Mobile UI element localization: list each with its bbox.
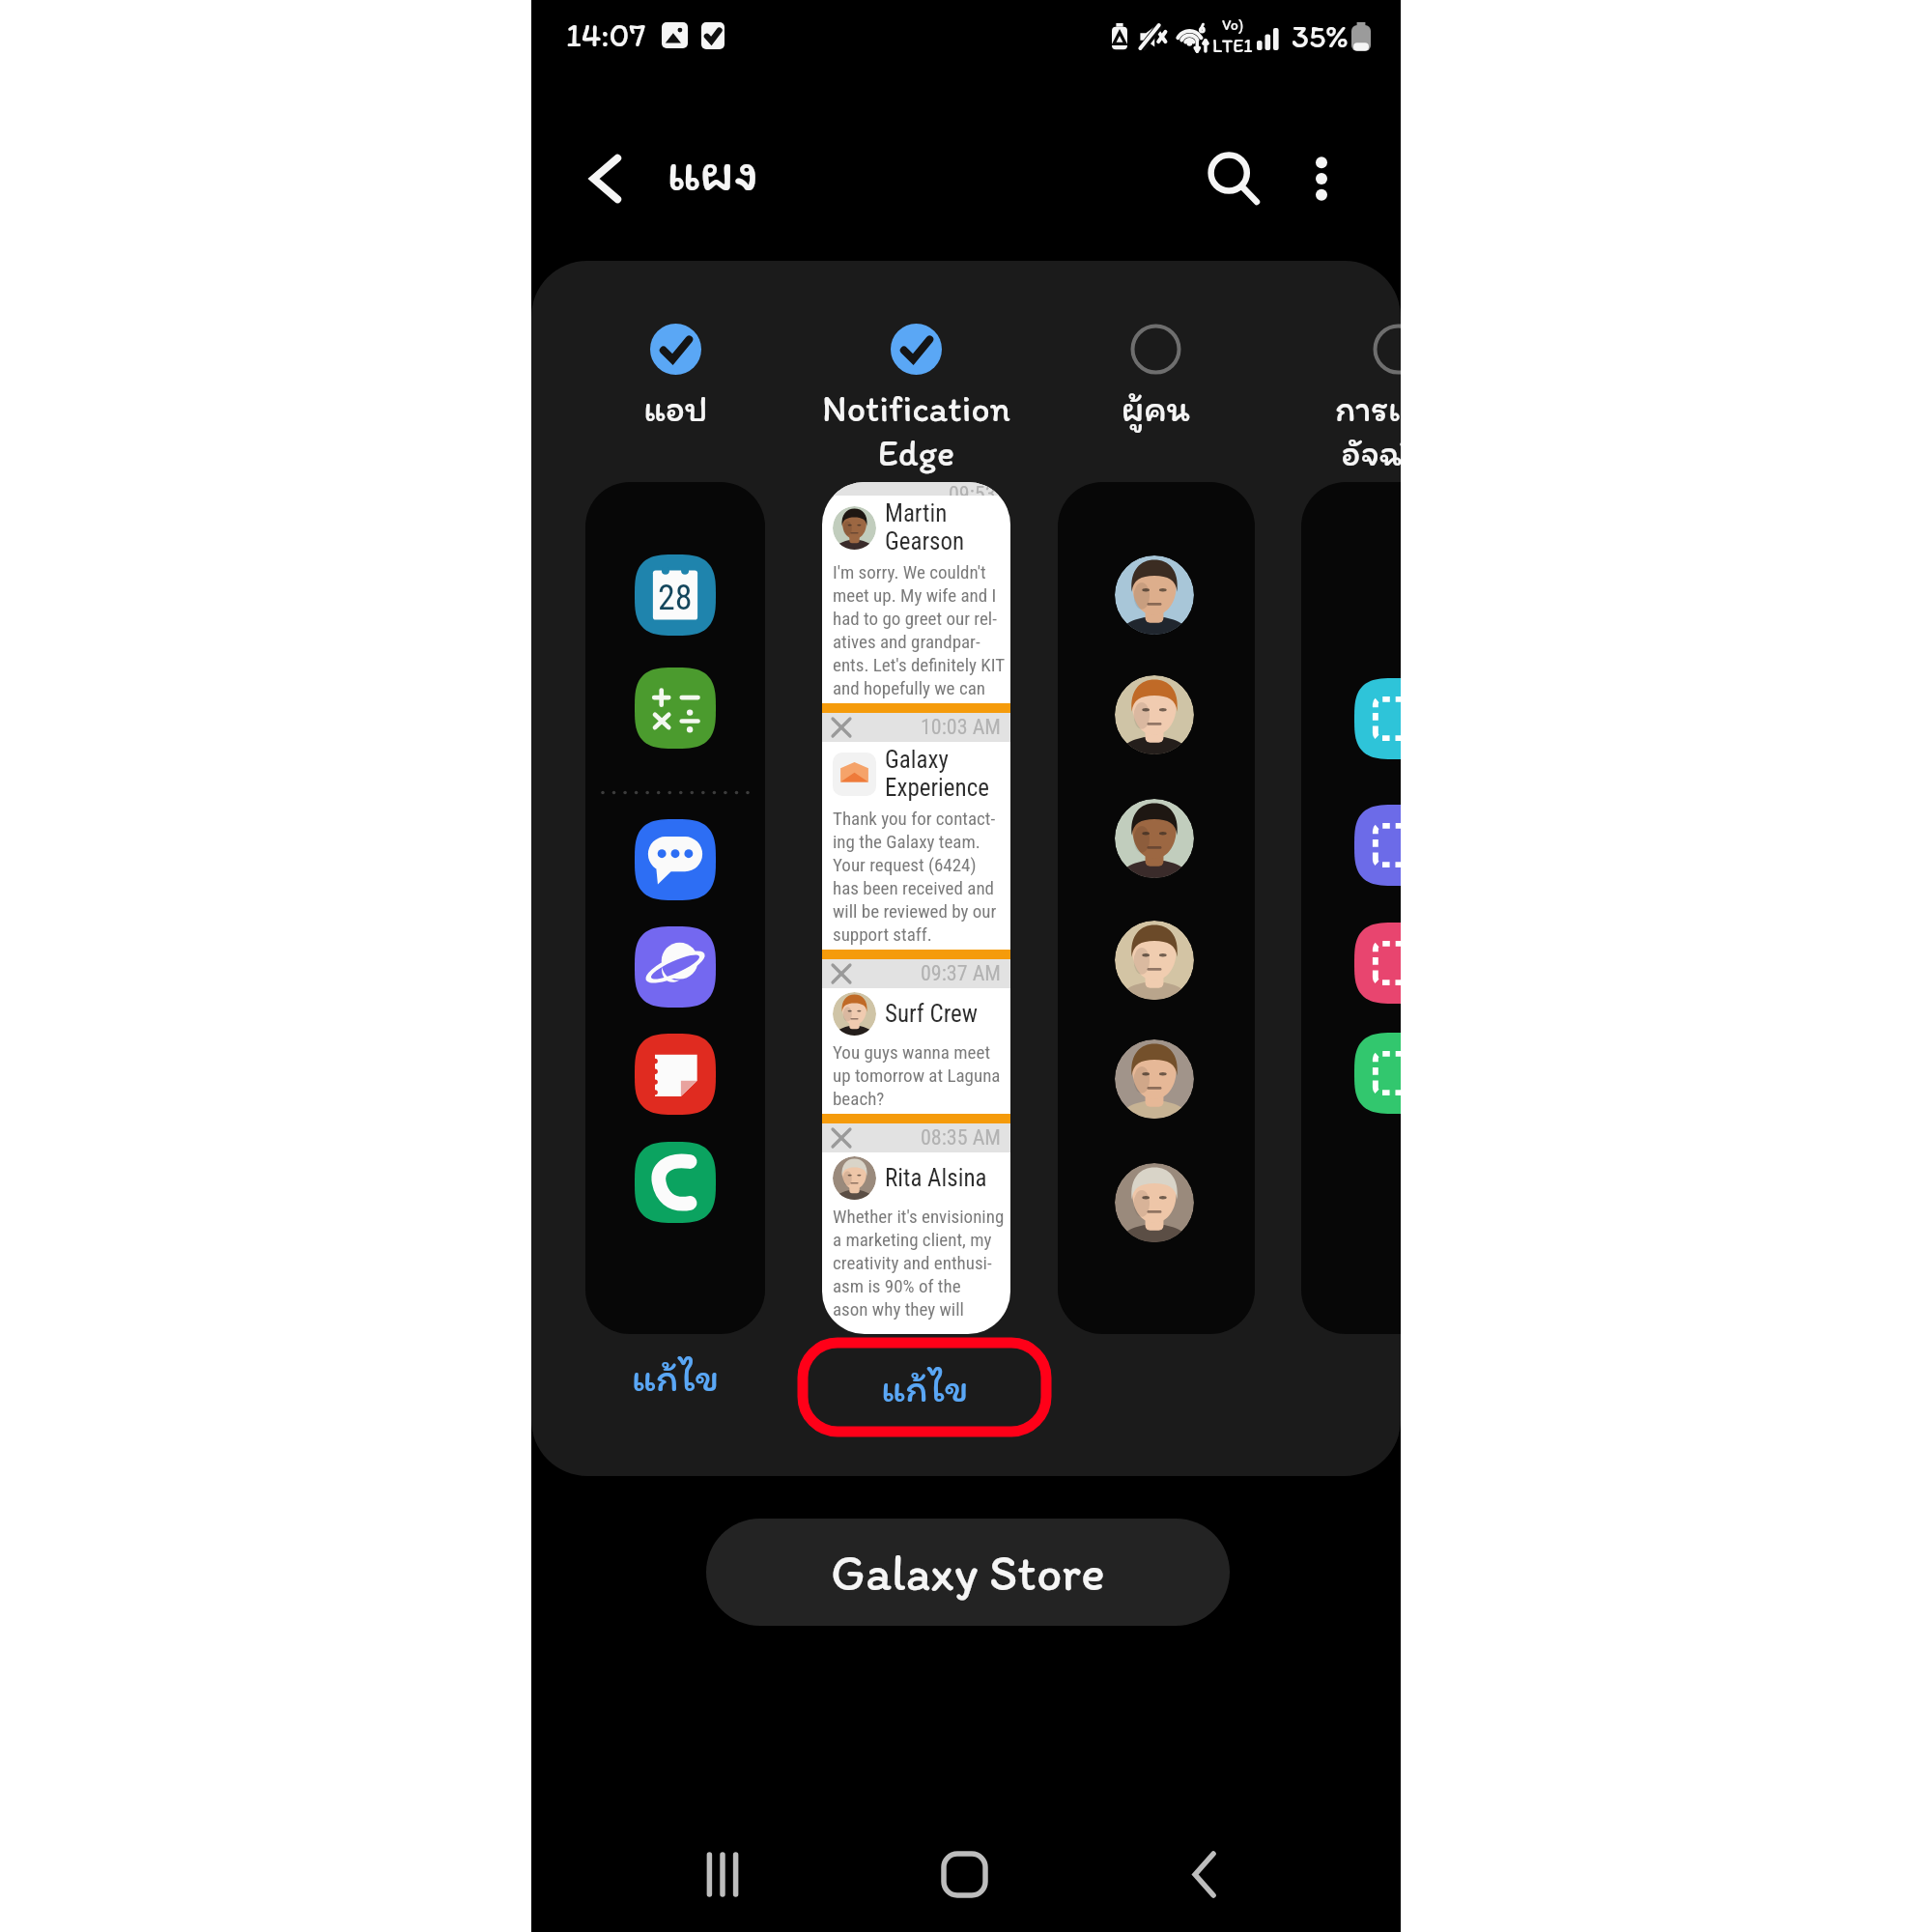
staticText: 35% bbox=[1292, 17, 1349, 56]
button[interactable]: Back bbox=[1147, 1816, 1263, 1932]
staticText: You guys wanna meet up tomorrow at Lagun… bbox=[833, 1041, 1001, 1109]
button[interactable]: แอป bbox=[554, 324, 796, 431]
staticText: Martin Gearson bbox=[885, 499, 965, 555]
staticText: Galaxy Store bbox=[831, 1543, 1105, 1603]
staticText: 09:37 AM bbox=[921, 961, 1001, 986]
staticText: แก้ไข bbox=[881, 1363, 969, 1411]
staticText: 08:35 AM bbox=[921, 1125, 1001, 1151]
button[interactable]: Galaxy Store bbox=[706, 1519, 1230, 1626]
staticText: 28 bbox=[658, 578, 693, 618]
staticText: การเลือก อัจฉริยะ bbox=[1335, 386, 1401, 475]
staticText: Rita Alsina bbox=[885, 1164, 987, 1192]
button[interactable]: แก้ไข bbox=[798, 1338, 1051, 1436]
staticText: Thank you for contact- ing the Galaxy te… bbox=[833, 808, 997, 945]
staticText: แผง bbox=[667, 137, 759, 205]
staticText: 10:03 AM bbox=[921, 715, 1001, 740]
staticText: Galaxy Experience bbox=[885, 746, 989, 802]
button[interactable]: Apps panel preview bbox=[585, 482, 765, 1334]
staticText: ผู้คน bbox=[1122, 386, 1190, 431]
button[interactable]: Home bbox=[906, 1816, 1022, 1932]
staticText: 09:53 bbox=[949, 482, 1001, 496]
staticText: แอป bbox=[643, 386, 708, 431]
button[interactable]: ผู้คน bbox=[1035, 324, 1276, 431]
button[interactable]: Notification Edge bbox=[795, 324, 1037, 475]
staticText: LTE1 bbox=[1212, 34, 1253, 57]
button[interactable]: More options bbox=[1264, 121, 1379, 237]
staticText: 14:07 bbox=[566, 15, 646, 55]
button[interactable]: แก้ไข bbox=[585, 1352, 765, 1401]
button[interactable]: Search bbox=[1176, 121, 1292, 237]
button[interactable]: Back bbox=[549, 121, 665, 237]
staticText: I'm sorry. We couldn't meet up. My wife … bbox=[833, 561, 1006, 698]
staticText: Whether it's envisioning a marketing cli… bbox=[833, 1206, 1005, 1320]
button[interactable]: People panel preview bbox=[1058, 482, 1255, 1334]
staticText: Notification Edge bbox=[822, 386, 1010, 475]
button[interactable]: Smart select panel preview bbox=[1301, 482, 1401, 1334]
staticText: Vo) bbox=[1222, 15, 1244, 34]
button[interactable]: การเลือก อัจฉริยะ bbox=[1277, 324, 1401, 475]
button[interactable]: Notification Edge panel preview bbox=[822, 482, 1010, 1334]
button[interactable]: Recents bbox=[665, 1816, 781, 1932]
staticText: Surf Crew bbox=[885, 1000, 979, 1028]
